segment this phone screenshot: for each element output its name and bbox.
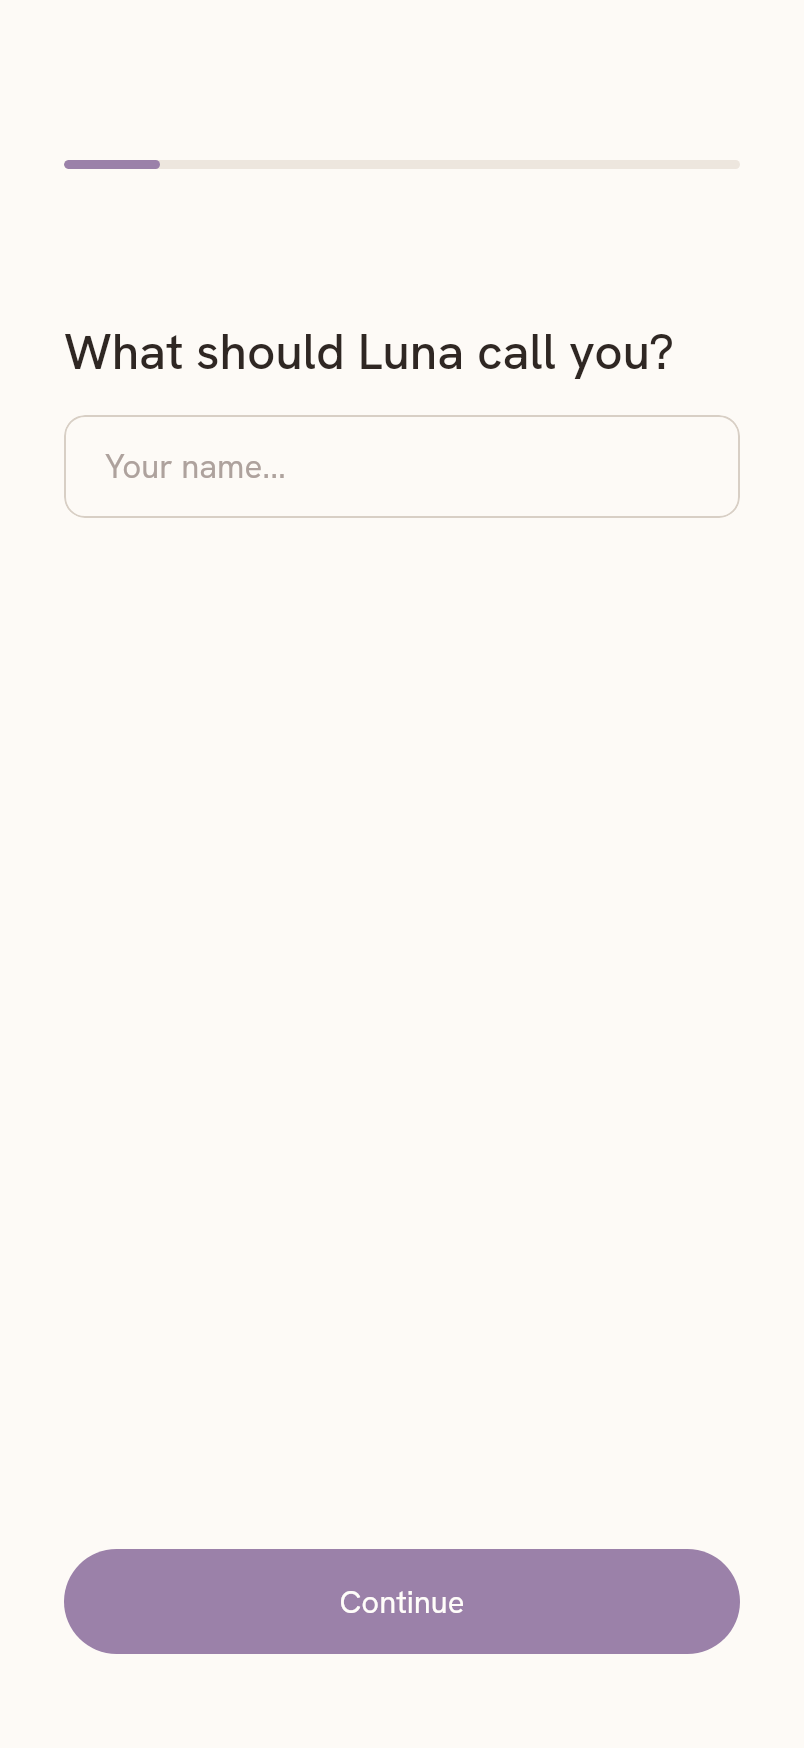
other: Onboarding progress <box>64 160 740 169</box>
staticText: Continue <box>339 1582 465 1622</box>
staticText: What should Luna call you? <box>64 319 675 383</box>
staticText: Your name... <box>105 445 287 488</box>
button[interactable]: Your name... <box>64 415 740 518</box>
button[interactable]: Continue <box>64 1549 740 1654</box>
